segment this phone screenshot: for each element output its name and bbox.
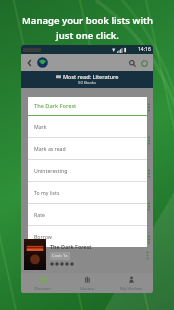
staticText: My Shelves <box>120 285 143 291</box>
staticText: To my lists <box>34 189 60 196</box>
staticText: 14:16 <box>138 46 151 53</box>
staticText: Library <box>80 285 95 291</box>
staticText: Borrow <box>34 233 52 240</box>
staticText: Rate <box>34 211 45 218</box>
button[interactable]: Search <box>126 57 138 69</box>
button[interactable] <box>21 91 153 124</box>
staticText: Mark <box>34 123 47 130</box>
button[interactable]: App logo <box>36 56 49 69</box>
button[interactable]: My Shelves <box>109 273 153 293</box>
staticText: The Dark Forest <box>50 243 92 250</box>
button[interactable]: To my lists <box>28 182 147 203</box>
button[interactable]: Back <box>24 57 36 69</box>
staticText: Manage your book lists with <box>22 14 153 27</box>
staticText: just one click. <box>56 29 119 42</box>
staticText: Most read: Literature <box>63 73 119 80</box>
button[interactable]: Mark as read <box>28 138 147 159</box>
button[interactable]: Cost: 1x <box>52 253 68 259</box>
staticText: Discover <box>34 285 52 291</box>
button[interactable] <box>21 124 153 157</box>
button[interactable]: Library <box>65 273 109 293</box>
staticText: Mark as read <box>34 145 66 152</box>
staticText: 50 Books <box>78 80 96 86</box>
button[interactable]: Mark <box>28 116 147 137</box>
button[interactable]: Refresh <box>138 57 150 69</box>
button[interactable]: The Dark Forest <box>21 237 153 272</box>
button[interactable]: Borrow <box>28 226 147 247</box>
button[interactable] <box>21 223 153 256</box>
button[interactable]: Rate <box>28 204 147 225</box>
button[interactable] <box>21 157 153 190</box>
button[interactable]: Uninteresting <box>28 160 147 181</box>
button[interactable] <box>21 190 153 223</box>
button[interactable]: More options <box>143 245 151 265</box>
button[interactable]: Discover <box>21 273 65 293</box>
staticText: The Dark Forest <box>34 102 77 110</box>
staticText: Uninteresting <box>34 167 68 174</box>
staticText: Cost: 1x <box>52 253 68 259</box>
